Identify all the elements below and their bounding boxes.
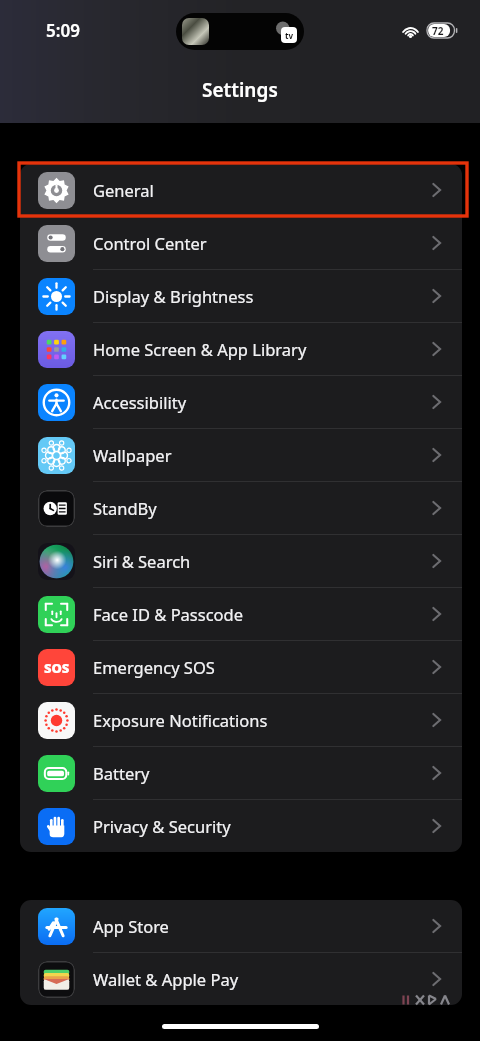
button[interactable]: Privacy and Security [20, 800, 462, 852]
button[interactable]: Exposure Notifications [20, 694, 462, 746]
staticText: Face ID & Passcode [93, 603, 244, 625]
other: Privacy and Security [38, 808, 75, 845]
other: Battery [38, 755, 75, 792]
other: Wallet and Apple Pay [38, 961, 75, 998]
button[interactable]: Emergency SOS [20, 641, 462, 693]
staticText: General [93, 179, 154, 201]
staticText: Home Screen & App Library [93, 338, 307, 360]
button[interactable]: Home Screen and App Library [20, 323, 462, 375]
staticText: 72 [432, 24, 444, 38]
button[interactable]: Siri and Search [20, 535, 462, 587]
staticText: Battery [93, 762, 150, 784]
staticText: Control Center [93, 232, 207, 254]
staticText: SOS [44, 659, 70, 677]
other: StandBy [38, 490, 75, 527]
other: Control Center [38, 225, 75, 262]
button[interactable]: Wallet and Apple Pay [20, 953, 462, 1005]
staticText: Privacy & Security [93, 815, 231, 837]
staticText: Settings [202, 77, 278, 103]
other: Face ID and Passcode [38, 596, 75, 633]
staticText: 5:09 [46, 19, 80, 42]
other: App Store [38, 908, 75, 945]
staticText: Wallet & Apple Pay [93, 968, 239, 990]
staticText: StandBy [93, 497, 157, 519]
other: Emergency SOS [38, 649, 75, 686]
staticText: Wallpaper [93, 444, 172, 466]
button[interactable]: Wallpaper [20, 429, 462, 481]
button[interactable]: Accessibility [20, 376, 462, 428]
button[interactable]: Battery [20, 747, 462, 799]
other: Wallpaper [38, 437, 75, 474]
other: Accessibility [38, 384, 75, 421]
staticText: tv [285, 30, 294, 41]
button[interactable]: StandBy [20, 482, 462, 534]
button[interactable]: Control Center [20, 217, 462, 269]
button[interactable]: App Store [20, 900, 462, 952]
other: Home Screen and App Library [38, 331, 75, 368]
other: Exposure Notifications [38, 702, 75, 739]
staticText: Exposure Notifications [93, 709, 268, 731]
other: General [38, 172, 75, 209]
staticText: Emergency SOS [93, 656, 215, 678]
button[interactable]: General [20, 164, 462, 216]
staticText: Accessibility [93, 391, 187, 413]
other: Siri and Search [38, 543, 75, 580]
staticText: App Store [93, 915, 169, 937]
button[interactable]: Display and Brightness [20, 270, 462, 322]
staticText: Siri & Search [93, 550, 191, 572]
staticText: Display & Brightness [93, 285, 254, 307]
button[interactable]: Face ID and Passcode [20, 588, 462, 640]
other: Display and Brightness [38, 278, 75, 315]
